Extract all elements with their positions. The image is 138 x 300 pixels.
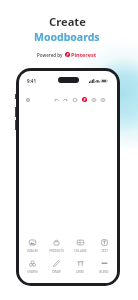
button[interactable]: BLEND xyxy=(93,260,115,274)
button[interactable]: DRAW xyxy=(45,260,67,274)
staticText: SHAPES xyxy=(27,270,38,274)
staticText: LINES xyxy=(76,270,84,274)
button[interactable]: Settings xyxy=(24,96,31,103)
button[interactable]: More options xyxy=(99,96,106,103)
staticText: COLLAGE xyxy=(74,249,87,253)
staticText: Moodboards xyxy=(34,30,100,44)
staticText: BLEND xyxy=(99,270,109,274)
button[interactable]: Undo xyxy=(53,96,60,103)
button[interactable]: Pinterest xyxy=(81,96,88,103)
button[interactable]: TEXT xyxy=(93,239,115,253)
button[interactable]: IMAGES xyxy=(21,239,43,253)
button[interactable]: SHAPES xyxy=(21,260,43,274)
staticText: 9:41 xyxy=(27,78,36,84)
staticText: Pinterest xyxy=(71,51,97,58)
button[interactable]: PRODUCTS xyxy=(45,239,67,253)
button[interactable]: Redo xyxy=(61,96,68,103)
staticText: Powered by xyxy=(37,52,63,58)
button[interactable]: COLLAGE xyxy=(69,239,91,253)
staticText: TEXT xyxy=(101,249,108,253)
staticText: IMAGES xyxy=(27,249,38,253)
button[interactable]: LINES xyxy=(69,260,91,274)
staticText: DRAW xyxy=(52,270,61,274)
button[interactable]: Layers xyxy=(71,96,78,103)
staticText: Create xyxy=(49,14,86,29)
staticText: PRODUCTS xyxy=(49,249,64,253)
button[interactable]: Preview xyxy=(90,96,97,103)
